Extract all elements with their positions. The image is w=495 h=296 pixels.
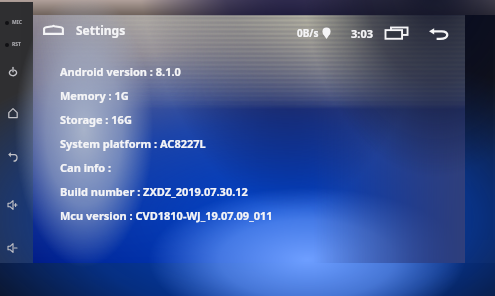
button[interactable]: Build number : ZXDZ_2019.07.30.12 (60, 179, 492, 203)
staticText: Build number : ZXDZ_2019.07.30.12 (60, 184, 248, 199)
staticText: Android version : 8.1.0 (60, 64, 181, 79)
staticText: Mcu version : CVD1810-WJ_19.07.09_011 (60, 208, 273, 223)
button[interactable]: Settings (41, 19, 126, 41)
staticText: Can info : (60, 160, 112, 175)
button[interactable]: Power (6, 65, 20, 79)
staticText: System platform : AC8227L (60, 136, 206, 151)
button[interactable]: Recent apps (383, 23, 409, 43)
staticText: RST (12, 41, 21, 48)
button[interactable]: Back (426, 23, 452, 43)
staticText: 0B/s (297, 26, 319, 40)
button[interactable]: Storage : 16G (60, 107, 492, 131)
button[interactable]: Volume up (6, 198, 20, 212)
button[interactable]: Home (6, 106, 20, 120)
staticText: Storage : 16G (60, 112, 132, 127)
button[interactable]: Volume down (6, 241, 20, 255)
staticText: Memory : 1G (60, 88, 129, 103)
button[interactable]: Memory : 1G (60, 83, 492, 107)
button[interactable]: Mcu version : CVD1810-WJ_19.07.09_011 (60, 203, 492, 227)
staticText: MIC (12, 19, 22, 26)
staticText: Settings (76, 22, 126, 38)
button[interactable]: Can info : (60, 155, 492, 179)
button[interactable]: Back (6, 150, 20, 164)
button[interactable]: System platform : AC8227L (60, 131, 492, 155)
button[interactable]: Android version : 8.1.0 (60, 59, 492, 83)
staticText: 3:03 (351, 26, 373, 41)
